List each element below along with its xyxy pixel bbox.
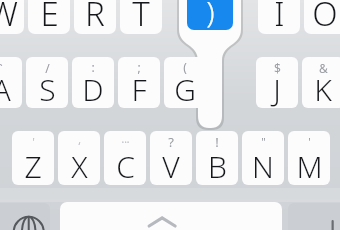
button[interactable]: A bbox=[0, 57, 22, 108]
button[interactable]: W bbox=[0, 0, 24, 34]
staticText: B bbox=[208, 146, 227, 185]
button[interactable]: T bbox=[120, 0, 162, 34]
staticText: ... bbox=[121, 132, 130, 146]
staticText: ' bbox=[32, 135, 35, 149]
staticText: & bbox=[319, 60, 328, 76]
staticText: ) bbox=[206, 0, 215, 30]
button[interactable]: V bbox=[150, 131, 192, 185]
staticText: I bbox=[274, 0, 285, 34]
button[interactable]: N bbox=[242, 131, 284, 185]
staticText: Z bbox=[24, 146, 42, 185]
button[interactable]: D bbox=[72, 57, 114, 108]
staticText: V bbox=[162, 146, 180, 185]
staticText: D bbox=[82, 69, 104, 108]
staticText: " bbox=[261, 134, 266, 149]
staticText: O bbox=[312, 0, 338, 34]
staticText: : bbox=[91, 59, 95, 75]
button[interactable]: B bbox=[196, 131, 238, 185]
staticText: , bbox=[78, 133, 81, 147]
button[interactable]: Return bbox=[288, 203, 340, 230]
button[interactable]: R bbox=[74, 0, 116, 34]
staticText: ? bbox=[168, 133, 174, 151]
staticText: / bbox=[45, 60, 50, 76]
staticText: A bbox=[0, 69, 11, 108]
staticText: N bbox=[252, 146, 274, 185]
staticText: ' bbox=[308, 134, 311, 149]
button[interactable]: I bbox=[258, 0, 300, 34]
button[interactable]: Switch keyboard language bbox=[0, 203, 50, 230]
staticText: K bbox=[314, 69, 332, 108]
staticText: R bbox=[85, 0, 105, 34]
button[interactable]: E bbox=[28, 0, 70, 34]
button[interactable]: F bbox=[118, 57, 160, 108]
staticText: W bbox=[0, 0, 18, 34]
staticText: J bbox=[273, 69, 281, 108]
staticText: ( bbox=[183, 59, 187, 75]
button[interactable]: Z bbox=[12, 131, 54, 185]
button[interactable]: Space bbox=[60, 202, 282, 230]
button[interactable]: O bbox=[304, 0, 340, 34]
button[interactable]: X bbox=[58, 131, 100, 185]
staticText: ; bbox=[137, 59, 141, 75]
button[interactable]: K bbox=[302, 57, 340, 108]
staticText: M bbox=[296, 146, 323, 185]
button[interactable]: Close parenthesis bbox=[187, 0, 233, 30]
staticText: F bbox=[131, 69, 147, 108]
button[interactable]: M bbox=[288, 131, 330, 185]
staticText: C bbox=[116, 146, 135, 185]
staticText: ! bbox=[215, 133, 219, 151]
button[interactable]: C bbox=[104, 131, 146, 185]
staticText: S bbox=[39, 69, 56, 108]
staticText: X bbox=[71, 146, 88, 185]
staticText: T bbox=[132, 0, 150, 34]
button[interactable]: G bbox=[164, 57, 206, 108]
button[interactable]: J bbox=[256, 57, 298, 108]
staticText: E bbox=[40, 0, 59, 34]
button[interactable]: S bbox=[26, 57, 68, 108]
staticText: ` bbox=[0, 61, 3, 76]
staticText: $ bbox=[274, 60, 281, 76]
staticText: G bbox=[174, 69, 196, 108]
